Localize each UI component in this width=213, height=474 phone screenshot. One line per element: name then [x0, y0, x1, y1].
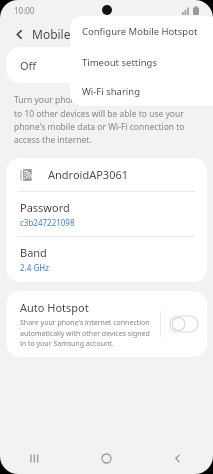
button[interactable]: Off: [6, 47, 207, 83]
button[interactable]: Auto Hotspot toggle: [170, 316, 198, 332]
staticText: Password: [20, 200, 70, 215]
button[interactable]: AndroidAP3061: [6, 158, 207, 191]
button[interactable]: Timeout settings: [70, 47, 213, 77]
button[interactable]: Password: [6, 192, 207, 236]
staticText: Auto Hotspot: [20, 300, 89, 315]
button[interactable]: Wi-Fi sharing: [70, 77, 213, 106]
staticText: Mobile Hotspot: [32, 26, 119, 42]
staticText: Share your phone's internet connection a…: [20, 318, 154, 348]
staticText: Wi-Fi sharing: [82, 85, 141, 98]
staticText: 10:00: [14, 5, 35, 16]
staticText: 2.4 GHz: [20, 262, 49, 273]
button[interactable]: Configure Mobile Hotspot: [70, 16, 213, 47]
staticText: Band: [20, 245, 47, 260]
staticText: c3b247221098: [20, 217, 75, 228]
button[interactable]: Band: [6, 237, 207, 282]
button[interactable]: Auto Hotspot: [6, 291, 207, 357]
button[interactable]: Recent apps: [0, 442, 71, 474]
staticText: Configure Mobile Hotspot: [82, 25, 198, 38]
staticText: Timeout settings: [82, 56, 157, 69]
button[interactable]: Back: [142, 442, 213, 474]
staticText: AndroidAP3061: [48, 167, 129, 182]
button[interactable]: Home: [71, 442, 142, 474]
button[interactable]: Back: [8, 23, 30, 45]
staticText: Turn your phone into a Wi-Fi access poin…: [14, 94, 199, 145]
staticText: Off: [20, 58, 37, 73]
